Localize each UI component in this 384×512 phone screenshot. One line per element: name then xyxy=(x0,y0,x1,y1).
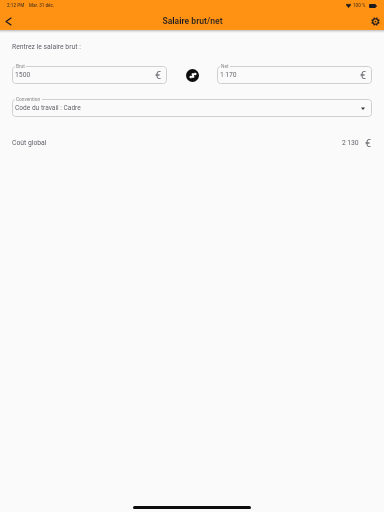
button[interactable]: 1500 xyxy=(12,66,167,84)
staticText: Code du travail : Cadre xyxy=(15,104,81,112)
button[interactable]: Coût global xyxy=(0,137,384,151)
staticText: 100 % xyxy=(353,3,366,8)
staticText: Net xyxy=(221,64,229,70)
staticText: 1 170 xyxy=(220,71,237,79)
staticText: Mar. 31 déc. xyxy=(29,3,55,8)
staticText: € xyxy=(155,69,162,82)
staticText: 2:12 PM xyxy=(7,3,25,8)
staticText: Coût global xyxy=(12,139,47,147)
staticText: Rentrez le salaire brut : xyxy=(12,43,81,51)
staticText: € xyxy=(360,69,367,82)
staticText: 2 130 xyxy=(342,139,359,147)
button[interactable]: Settings xyxy=(367,13,383,29)
button[interactable]: Swap brut and net xyxy=(186,69,199,82)
button[interactable]: Code du travail : Cadre xyxy=(12,99,372,117)
button[interactable]: Back xyxy=(0,13,16,29)
button[interactable]: 1 170 xyxy=(217,66,372,84)
staticText: € xyxy=(365,137,372,150)
staticText: Salaire brut/net xyxy=(162,16,223,26)
staticText: Convention xyxy=(16,97,41,103)
staticText: 1500 xyxy=(15,71,31,79)
staticText: Brut xyxy=(16,64,25,70)
